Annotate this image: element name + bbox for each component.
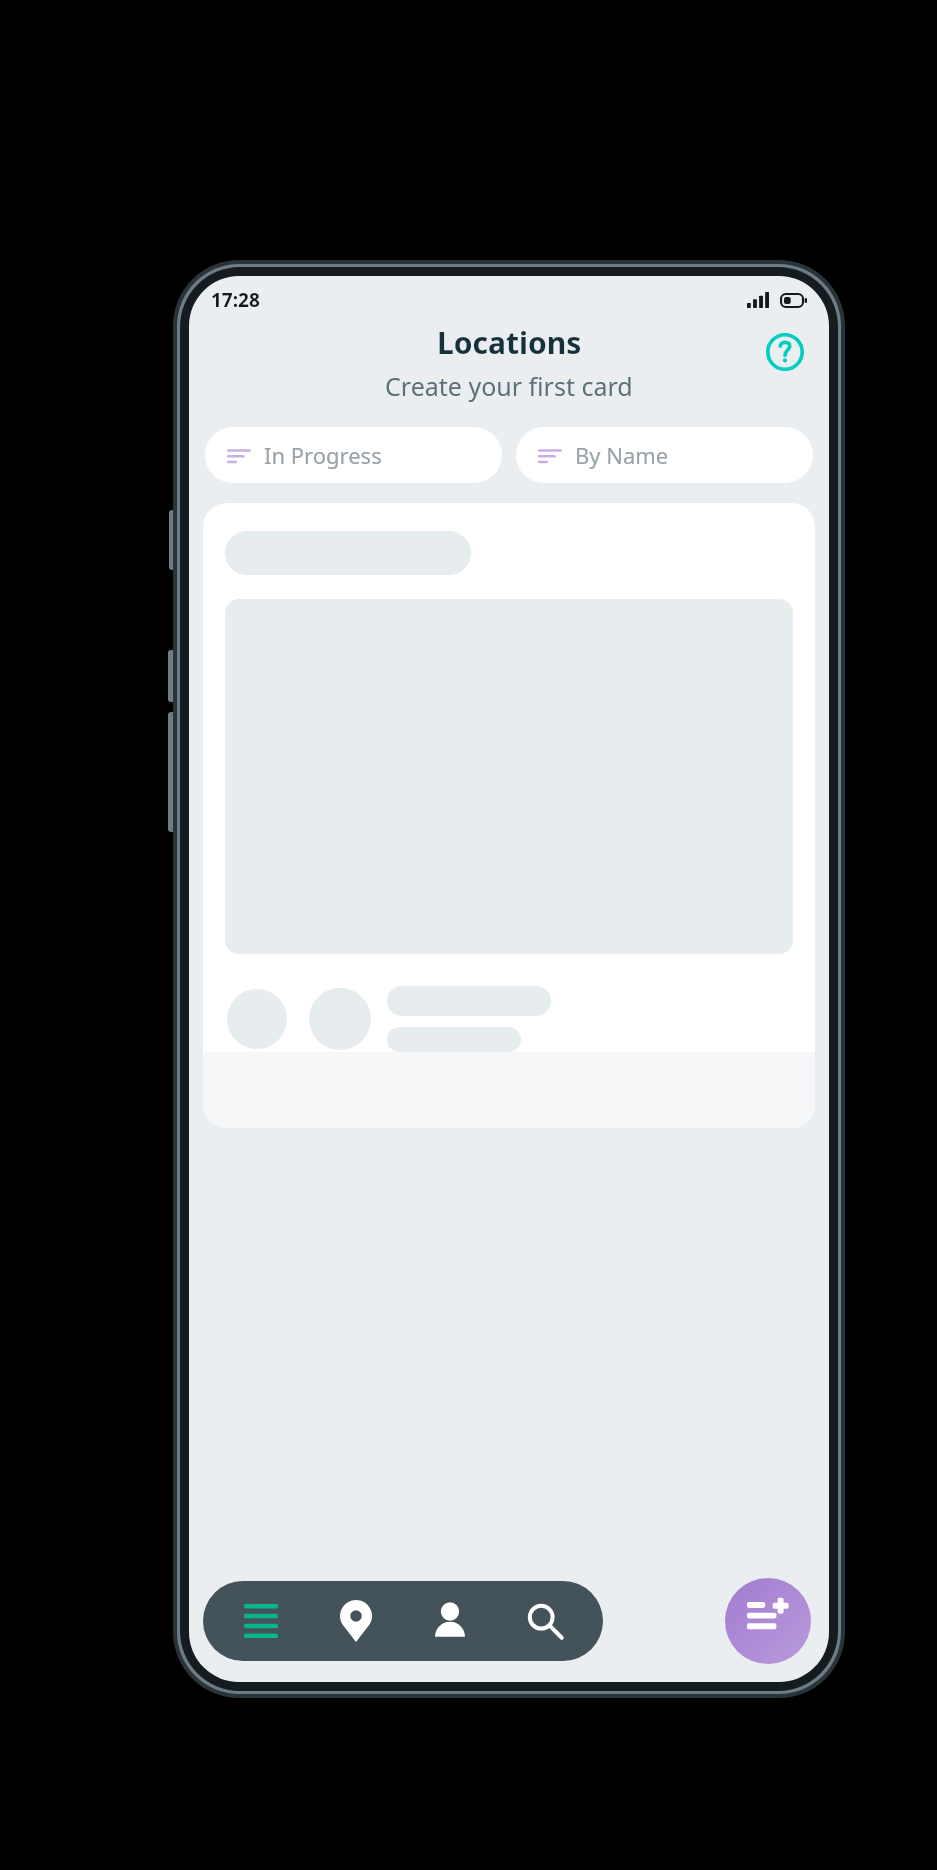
button[interactable]: Add card	[725, 1578, 811, 1664]
button[interactable]: List	[225, 1585, 297, 1657]
staticText: In Progress	[264, 440, 382, 470]
button[interactable]	[203, 503, 815, 1128]
staticText: 17:28	[211, 287, 260, 313]
button[interactable]: By Name	[516, 427, 813, 483]
staticText: Locations	[437, 322, 582, 363]
button[interactable]: In Progress	[205, 427, 502, 483]
button[interactable]: Profile	[414, 1585, 486, 1657]
staticText: By Name	[575, 440, 669, 470]
button[interactable]: Search	[509, 1585, 581, 1657]
button[interactable]: Map	[320, 1585, 392, 1657]
staticText: Create your first card	[385, 369, 633, 403]
button[interactable]: Help	[763, 330, 807, 374]
